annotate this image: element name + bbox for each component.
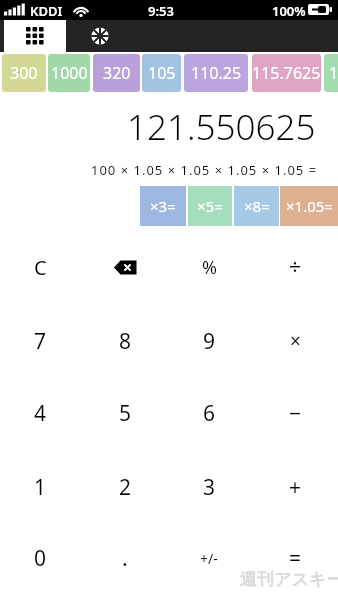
button[interactable]: = xyxy=(261,534,329,582)
button[interactable]: . xyxy=(91,534,159,582)
button[interactable]: ÷ xyxy=(261,243,329,291)
staticText: 300 xyxy=(10,62,38,84)
button[interactable]: − xyxy=(261,389,329,437)
button[interactable] xyxy=(91,243,159,291)
staticText: 1000 xyxy=(51,62,88,84)
staticText: 100 × 1.05 × 1.05 × 1.05 × 1.05 = xyxy=(91,161,318,179)
staticText: 105 xyxy=(148,62,176,84)
staticText: 115.7625 xyxy=(252,62,321,84)
button[interactable] xyxy=(68,20,132,52)
button[interactable]: ×8= xyxy=(234,186,279,226)
staticText: 4 xyxy=(34,399,47,428)
button[interactable]: 8 xyxy=(91,317,159,365)
button[interactable]: 3 xyxy=(175,463,243,511)
staticText: % xyxy=(202,255,217,280)
button[interactable]: × xyxy=(261,317,329,365)
staticText: 9 xyxy=(203,327,216,356)
staticText: − xyxy=(289,399,302,428)
button[interactable] xyxy=(4,20,66,52)
button[interactable]: 105 xyxy=(142,54,181,92)
staticText: ÷ xyxy=(289,253,302,282)
button[interactable]: +/- xyxy=(175,534,243,582)
staticText: 121.550625 xyxy=(329,62,338,84)
staticText: ×1.05= xyxy=(286,196,333,216)
staticText: 6 xyxy=(203,399,216,428)
button[interactable]: 1 xyxy=(6,463,74,511)
staticText: 0 xyxy=(34,544,47,573)
button[interactable]: 115.7625 xyxy=(252,54,321,92)
staticText: 8 xyxy=(119,327,132,356)
button[interactable]: 9 xyxy=(175,317,243,365)
staticText: ×5= xyxy=(197,196,223,216)
button[interactable]: 2 xyxy=(91,463,159,511)
staticText: 100% xyxy=(272,2,306,20)
staticText: 121.550625 xyxy=(127,103,316,149)
button[interactable]: ×3= xyxy=(140,186,186,226)
button[interactable]: 121.550625 xyxy=(324,54,338,92)
button[interactable]: C xyxy=(6,243,74,291)
staticText: + xyxy=(289,473,302,502)
staticText: 7 xyxy=(34,327,47,356)
button[interactable]: + xyxy=(261,463,329,511)
staticText: × xyxy=(290,328,301,354)
button[interactable]: 320 xyxy=(93,54,140,92)
button[interactable]: 1000 xyxy=(48,54,90,92)
staticText: 1 xyxy=(34,473,47,502)
staticText: ×3= xyxy=(150,196,176,216)
staticText: 週刊アスキー xyxy=(240,569,338,590)
staticText: . xyxy=(122,544,128,573)
staticText: 5 xyxy=(119,399,132,428)
staticText: 2 xyxy=(119,473,132,502)
staticText: 9:53 xyxy=(148,2,174,20)
button[interactable]: ×1.05= xyxy=(280,186,338,226)
staticText: 110.25 xyxy=(191,62,242,84)
button[interactable]: 4 xyxy=(6,389,74,437)
staticText: +/- xyxy=(200,549,218,568)
staticText: KDDI xyxy=(30,2,63,20)
button[interactable]: 6 xyxy=(175,389,243,437)
button[interactable]: 110.25 xyxy=(184,54,248,92)
staticText: C xyxy=(34,254,47,281)
button[interactable]: 5 xyxy=(91,389,159,437)
staticText: = xyxy=(289,544,302,573)
button[interactable]: 0 xyxy=(6,534,74,582)
staticText: 3 xyxy=(203,473,216,502)
button[interactable]: ×5= xyxy=(188,186,232,226)
button[interactable]: 300 xyxy=(2,54,46,92)
button[interactable]: 7 xyxy=(6,317,74,365)
staticText: 320 xyxy=(103,62,131,84)
staticText: ×8= xyxy=(244,196,270,216)
button[interactable]: % xyxy=(175,243,243,291)
